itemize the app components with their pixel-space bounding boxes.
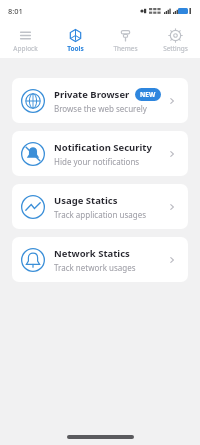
staticText: Track application usages: [54, 209, 146, 220]
staticText: 8:01: [8, 6, 23, 16]
staticText: Usage Statics: [54, 194, 118, 207]
button[interactable]: Usage Statics: [12, 184, 188, 229]
button[interactable]: Themes: [100, 22, 150, 58]
staticText: NEW: [140, 90, 156, 99]
other: Open Private Browser: [165, 94, 179, 108]
other: Open Notification Security: [165, 147, 179, 161]
button[interactable]: Settings: [150, 22, 200, 58]
staticText: Themes: [113, 44, 138, 53]
staticText: Network Statics: [54, 247, 130, 260]
button[interactable]: Notification Security: [12, 131, 188, 176]
staticText: Private Browser: [54, 88, 130, 101]
button[interactable]: Private Browser: [12, 78, 188, 123]
button[interactable]: Tools: [50, 22, 100, 58]
staticText: Notification Security: [54, 141, 152, 154]
staticText: Browse the web securely: [54, 103, 147, 114]
staticText: Hide your notifications: [54, 156, 140, 167]
staticText: Track network usages: [54, 262, 136, 273]
button[interactable]: Applock: [0, 22, 50, 58]
other: Open Network Statics: [165, 253, 179, 267]
other: Open Usage Statics: [165, 200, 179, 214]
staticText: Applock: [13, 44, 38, 53]
staticText: Tools: [67, 44, 84, 53]
button[interactable]: Network Statics: [12, 237, 188, 282]
staticText: Settings: [163, 44, 188, 53]
